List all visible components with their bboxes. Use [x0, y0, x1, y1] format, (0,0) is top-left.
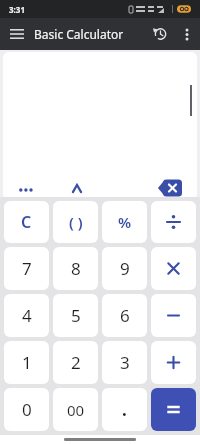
button[interactable]: C	[4, 201, 49, 243]
button[interactable]	[151, 247, 196, 290]
staticText: 0	[22, 398, 32, 421]
button[interactable]	[13, 181, 39, 197]
button[interactable]: 2	[53, 341, 98, 384]
staticText: 3:31	[9, 4, 25, 15]
button[interactable]: %	[102, 201, 147, 243]
button[interactable]: .	[102, 388, 147, 431]
button[interactable]	[151, 341, 196, 384]
button[interactable]: 5	[53, 294, 98, 337]
button[interactable]	[151, 201, 196, 243]
button[interactable]: 4	[4, 294, 49, 337]
staticText: 5	[71, 304, 81, 327]
button[interactable]: 6	[102, 294, 147, 337]
button[interactable]	[151, 388, 196, 431]
staticText: 3	[120, 351, 130, 374]
staticText: 4	[22, 304, 32, 327]
button[interactable]: 1	[4, 341, 49, 384]
button[interactable]	[0, 18, 34, 50]
staticText: ( )	[69, 212, 83, 232]
button[interactable]	[157, 179, 182, 197]
staticText: .	[122, 398, 127, 421]
staticText: 7	[22, 257, 32, 280]
button[interactable]	[146, 18, 174, 50]
staticText: 1	[22, 351, 32, 374]
staticText: 00	[67, 400, 85, 420]
button[interactable]: 8	[53, 247, 98, 290]
button[interactable]	[66, 179, 88, 197]
staticText: 2	[71, 351, 81, 374]
button[interactable]: 7	[4, 247, 49, 290]
button[interactable]: 0	[4, 388, 49, 431]
staticText: %	[118, 212, 132, 232]
button[interactable]: 3	[102, 341, 147, 384]
staticText: C	[21, 211, 32, 233]
button[interactable]	[151, 294, 196, 337]
button[interactable]: 00	[53, 388, 98, 431]
staticText: 8	[71, 257, 81, 280]
staticText: 9	[120, 257, 130, 280]
staticText: Basic Calculator	[34, 26, 124, 42]
button[interactable]: ( )	[53, 201, 98, 243]
button[interactable]: 9	[102, 247, 147, 290]
button[interactable]	[174, 18, 200, 50]
staticText: 6	[120, 304, 130, 327]
